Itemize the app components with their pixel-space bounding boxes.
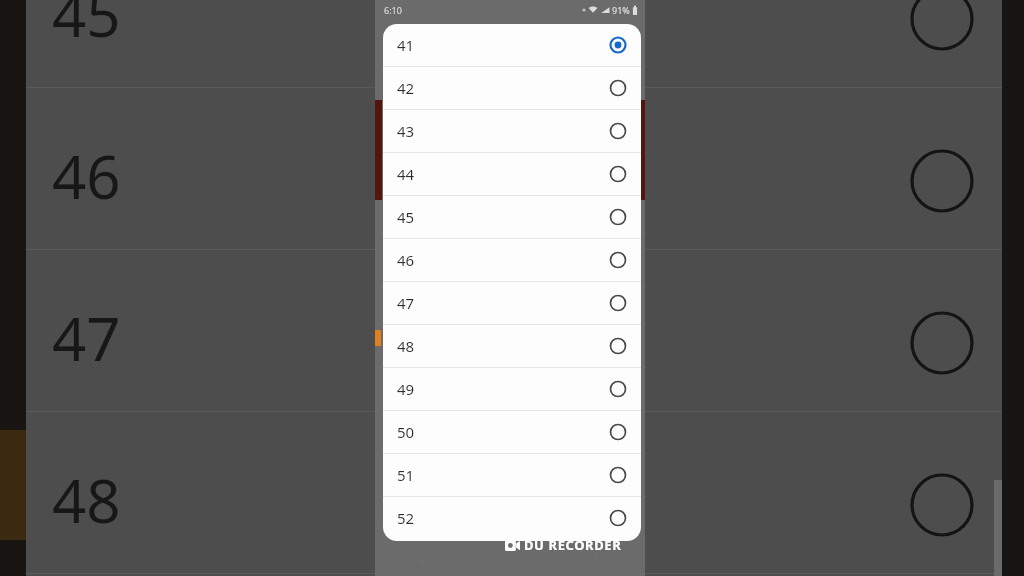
staticText: 6:10	[384, 4, 402, 16]
button[interactable]: 46	[383, 239, 641, 281]
button[interactable]: 41	[383, 24, 641, 66]
button[interactable]: 45	[383, 196, 641, 238]
staticText: 47	[397, 293, 415, 313]
button[interactable]: 42	[383, 67, 641, 109]
staticText: 46	[52, 135, 121, 217]
staticText: 47	[52, 297, 121, 379]
button[interactable]: Recents	[555, 542, 645, 576]
button[interactable]: 52	[383, 497, 641, 539]
staticText: 45	[397, 207, 415, 227]
staticText: DU RECORDER	[524, 536, 622, 554]
staticText: 52	[397, 508, 415, 528]
button[interactable]: 44	[383, 153, 641, 195]
button[interactable]: 48	[383, 325, 641, 367]
staticText: 91%	[612, 4, 630, 16]
staticText: 48	[397, 336, 415, 356]
button[interactable]: 43	[383, 110, 641, 152]
staticText: 45	[52, 0, 121, 55]
staticText: 50	[397, 422, 415, 442]
staticText: 43	[397, 121, 415, 141]
button[interactable]: 49	[383, 368, 641, 410]
staticText: 49	[397, 379, 415, 399]
staticText: 48	[52, 459, 121, 541]
staticText: 51	[397, 465, 415, 485]
staticText: 41	[397, 35, 415, 55]
button[interactable]: 51	[383, 454, 641, 496]
staticText: 42	[397, 78, 415, 98]
button[interactable]: 50	[383, 411, 641, 453]
staticText: 44	[397, 164, 415, 184]
button[interactable]: Home	[465, 542, 555, 576]
staticText: 46	[397, 250, 415, 270]
button[interactable]: 47	[383, 282, 641, 324]
